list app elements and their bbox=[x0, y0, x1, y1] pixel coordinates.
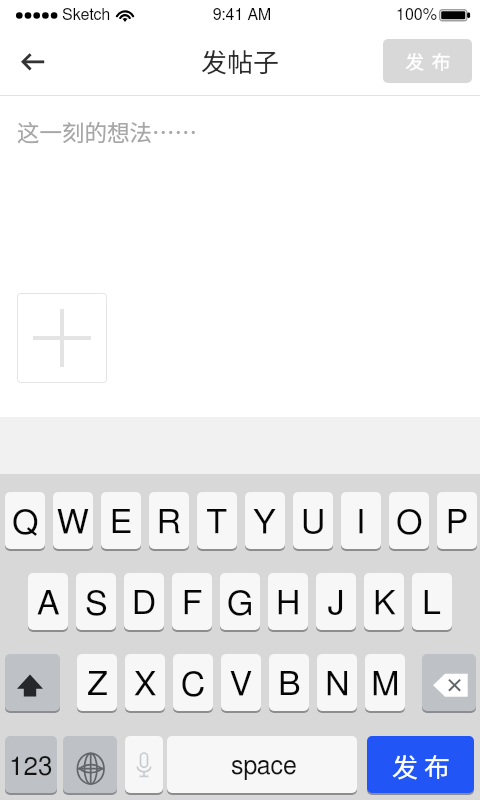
staticText: W bbox=[57, 506, 89, 540]
button[interactable]: V bbox=[221, 654, 261, 711]
button[interactable]: C bbox=[173, 654, 213, 711]
staticText: L bbox=[422, 587, 442, 621]
button[interactable]: D bbox=[124, 573, 164, 630]
button[interactable]: Q bbox=[5, 492, 45, 549]
staticText: D bbox=[132, 587, 156, 621]
button[interactable]: P bbox=[437, 492, 477, 549]
button[interactable]: Back bbox=[8, 41, 56, 83]
staticText: Y bbox=[253, 506, 277, 540]
button[interactable]: Voice input bbox=[125, 736, 163, 793]
staticText: F bbox=[182, 587, 203, 621]
button[interactable]: Y bbox=[245, 492, 285, 549]
button[interactable]: B bbox=[269, 654, 309, 711]
staticText: U bbox=[301, 506, 326, 540]
staticText: space bbox=[231, 754, 297, 779]
staticText: R bbox=[157, 506, 182, 540]
staticText: A bbox=[37, 587, 60, 621]
staticText: Q bbox=[12, 506, 39, 540]
staticText: 9:41 AM bbox=[2, 7, 480, 23]
staticText: Z bbox=[87, 668, 108, 702]
button[interactable]: Shift bbox=[5, 654, 60, 711]
staticText: M bbox=[371, 668, 400, 702]
button[interactable]: H bbox=[268, 573, 308, 630]
button[interactable]: Z bbox=[77, 654, 117, 711]
button[interactable]: 发 布 bbox=[367, 736, 474, 793]
staticText: H bbox=[276, 587, 301, 621]
staticText: G bbox=[227, 587, 254, 621]
staticText: 这一刻的想法…… bbox=[17, 115, 198, 148]
staticText: Sketch bbox=[62, 7, 111, 23]
staticText: E bbox=[110, 506, 132, 540]
staticText: C bbox=[181, 668, 206, 702]
button[interactable]: Add photo bbox=[17, 293, 107, 383]
button[interactable]: I bbox=[341, 492, 381, 549]
staticText: P bbox=[446, 506, 469, 540]
staticText: V bbox=[230, 668, 252, 702]
button[interactable]: 发 布 bbox=[383, 39, 472, 83]
button[interactable]: L bbox=[412, 573, 452, 630]
staticText: O bbox=[396, 506, 423, 540]
button[interactable]: T bbox=[197, 492, 237, 549]
button[interactable]: S bbox=[76, 573, 116, 630]
staticText: 发帖子 bbox=[0, 42, 480, 80]
staticText: 发 布 bbox=[405, 47, 453, 75]
staticText: 100% bbox=[396, 7, 437, 23]
staticText: S bbox=[85, 587, 108, 621]
button[interactable]: space bbox=[167, 736, 357, 793]
staticText: B bbox=[278, 668, 301, 702]
button[interactable]: O bbox=[389, 492, 429, 549]
button[interactable]: G bbox=[220, 573, 260, 630]
button[interactable]: Change keyboard bbox=[63, 736, 117, 793]
staticText: X bbox=[134, 668, 157, 702]
staticText: K bbox=[373, 587, 396, 621]
button[interactable]: N bbox=[317, 654, 357, 711]
staticText: 发 布 bbox=[392, 747, 450, 785]
staticText: I bbox=[356, 506, 366, 540]
button[interactable]: F bbox=[172, 573, 212, 630]
button[interactable]: J bbox=[316, 573, 356, 630]
button[interactable]: Backspace bbox=[422, 654, 476, 711]
button[interactable]: X bbox=[125, 654, 165, 711]
staticText: J bbox=[327, 587, 345, 621]
button[interactable]: E bbox=[101, 492, 141, 549]
staticText: N bbox=[325, 668, 350, 702]
button[interactable]: M bbox=[365, 654, 405, 711]
staticText: 123 bbox=[9, 754, 53, 780]
button[interactable]: R bbox=[149, 492, 189, 549]
button[interactable]: U bbox=[293, 492, 333, 549]
button[interactable]: A bbox=[28, 573, 68, 630]
button[interactable]: W bbox=[53, 492, 93, 549]
button[interactable]: K bbox=[364, 573, 404, 630]
button[interactable]: Numbers bbox=[5, 736, 57, 793]
staticText: T bbox=[206, 506, 228, 540]
